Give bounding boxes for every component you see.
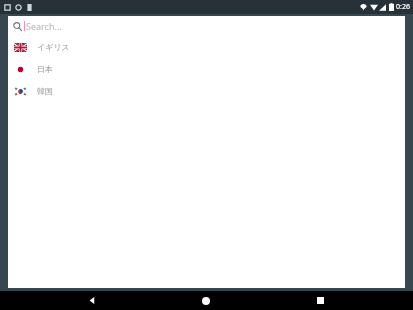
button[interactable]: 韓国 <box>8 80 405 102</box>
button[interactable]: Back <box>79 291 105 310</box>
button[interactable]: Search <box>8 16 405 36</box>
staticText: 日本 <box>37 64 53 74</box>
button[interactable]: イギリス <box>8 36 405 58</box>
button[interactable]: 日本 <box>8 58 405 80</box>
staticText: 0:26 <box>396 2 410 12</box>
other: Search <box>13 22 22 31</box>
button[interactable]: Recent apps <box>307 291 333 310</box>
button[interactable]: Home <box>193 291 219 310</box>
staticText: イギリス <box>37 42 70 52</box>
staticText: Search... <box>26 20 62 32</box>
staticText: 韓国 <box>37 86 53 96</box>
